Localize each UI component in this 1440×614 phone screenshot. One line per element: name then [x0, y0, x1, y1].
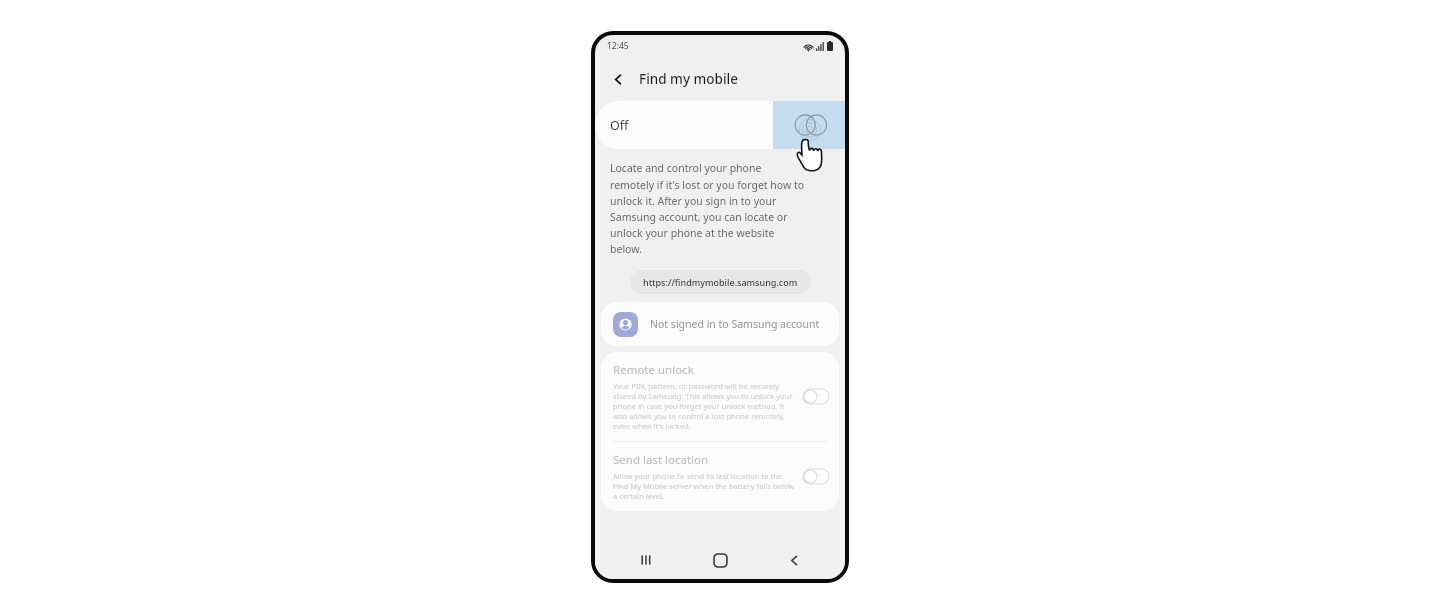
staticText: Locate and control your phone remotely i… — [610, 161, 807, 256]
button[interactable]: Home — [697, 541, 743, 579]
staticText: Your PIN, pattern, or password will be s… — [613, 381, 795, 431]
button[interactable]: https://findmymobile.samsung.com — [630, 270, 811, 294]
button[interactable]: Send last location — [601, 442, 839, 511]
staticText: 12:45 — [607, 40, 629, 52]
button[interactable]: Remote unlock — [601, 352, 839, 441]
staticText: Allow your phone to send its last locati… — [613, 471, 795, 501]
button[interactable]: Not signed in to Samsung account — [601, 302, 839, 346]
button[interactable]: Back — [605, 66, 631, 92]
staticText: Send last location — [613, 452, 709, 468]
staticText: https://findmymobile.samsung.com — [643, 276, 798, 288]
button[interactable]: Toggle Find my mobile — [773, 101, 845, 149]
staticText: Off — [610, 117, 629, 134]
staticText: Find my mobile — [639, 70, 738, 88]
staticText: Remote unlock — [613, 362, 694, 378]
button[interactable]: Back — [771, 541, 817, 579]
button[interactable]: Recents — [623, 541, 669, 579]
staticText: Not signed in to Samsung account — [650, 317, 820, 331]
